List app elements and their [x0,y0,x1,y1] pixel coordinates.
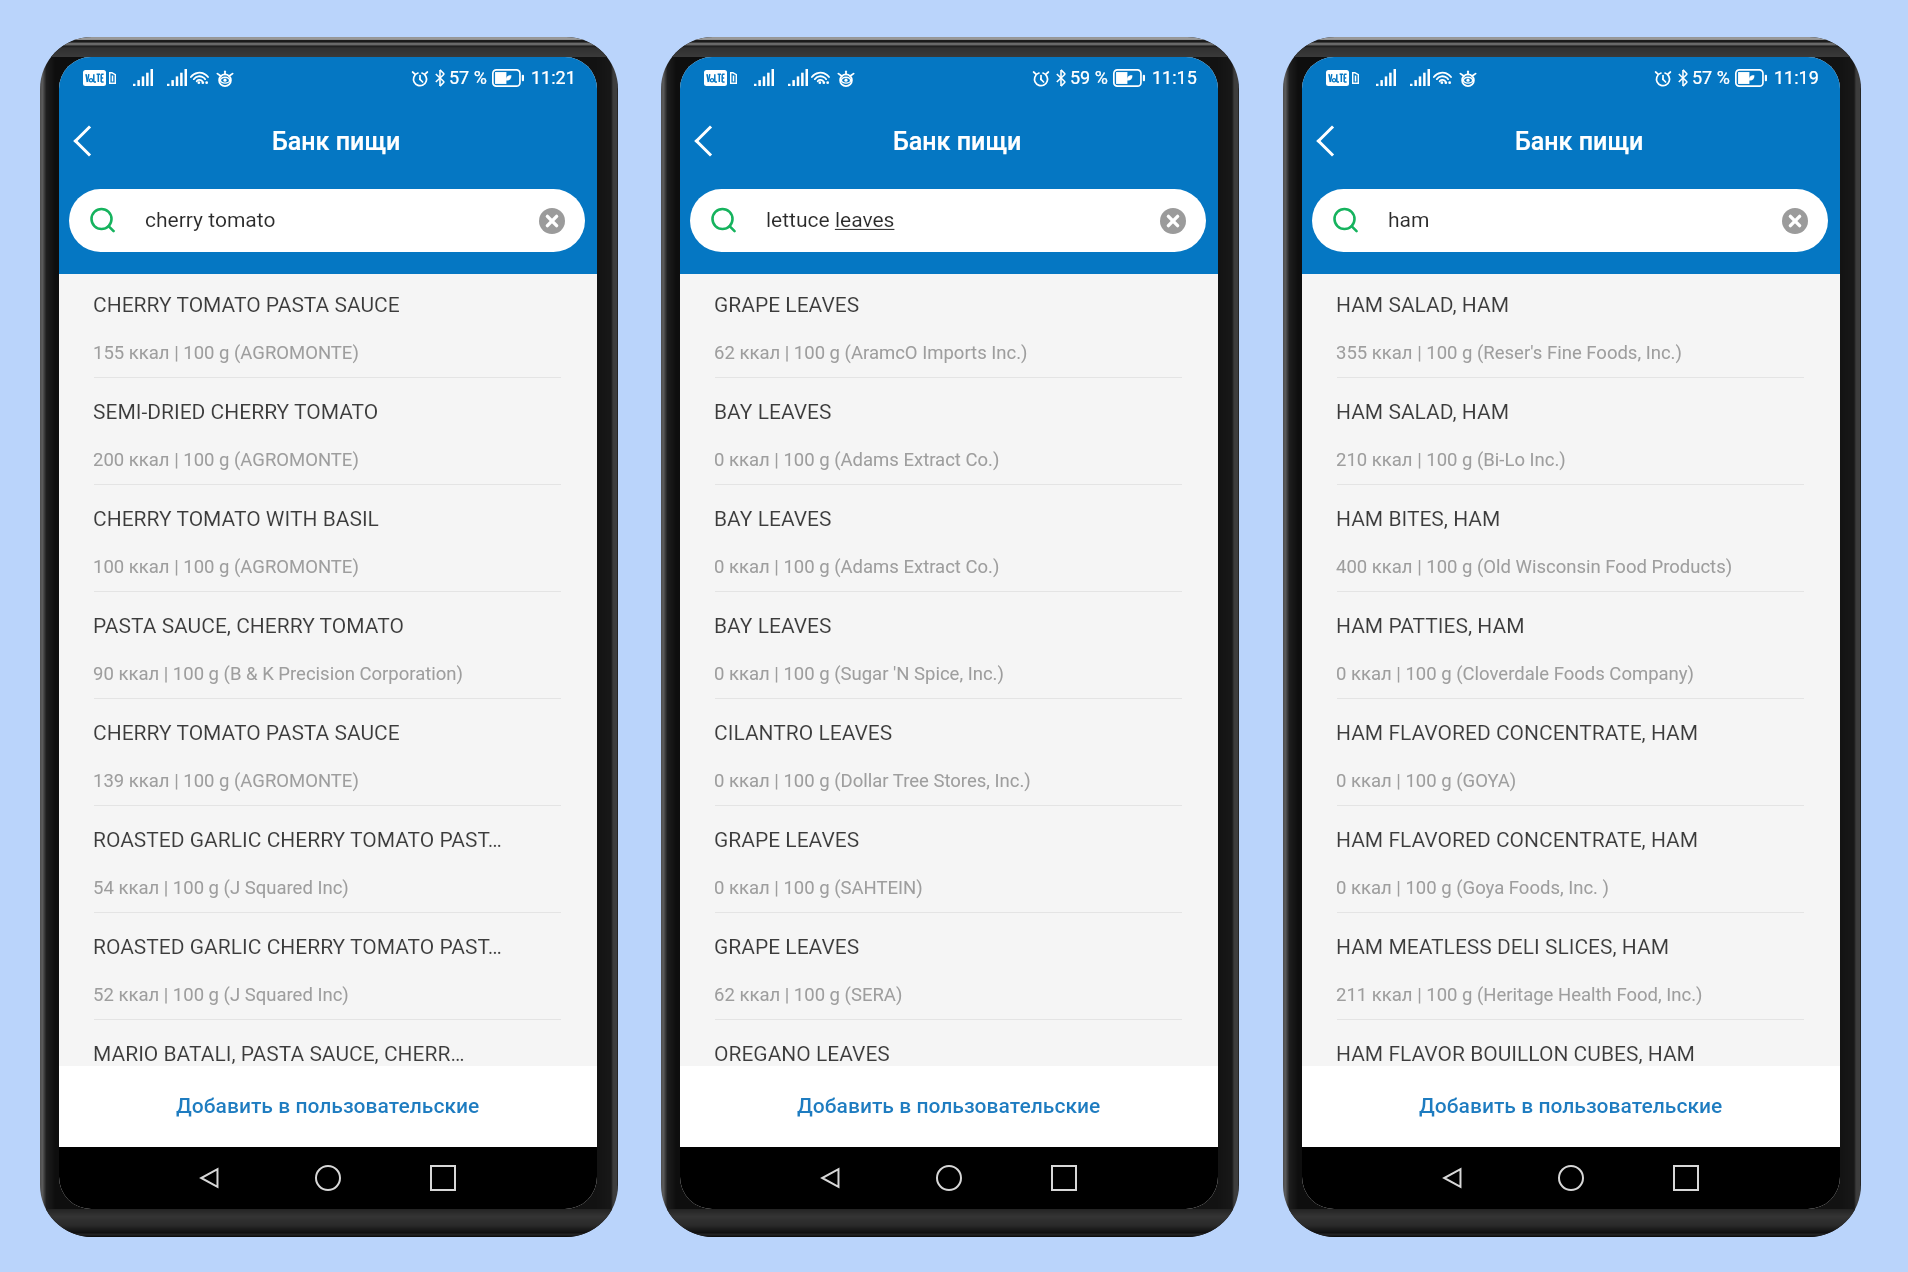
staticText: 139 ккал | 100 g (AGROMONTE) [93,770,359,792]
staticText: Добавить в пользовательские [176,1094,480,1119]
staticText: ROASTED GARLIC CHERRY TOMATO PAST… [93,935,502,960]
staticText: 0 ккал | 100 g (Adams Extract Co.) [714,556,1000,578]
button[interactable]: Back [680,113,731,169]
button[interactable]: Clear search [1782,208,1808,234]
button[interactable]: MARIO BATALI, PASTA SAUCE, CHERR… [59,1023,597,1066]
button[interactable]: Back [804,1151,858,1205]
staticText: HAM SALAD, HAM [1336,293,1510,318]
staticText: cherry tomato [145,208,276,233]
staticText: 0 ккал | 100 g (SAHTEIN) [714,877,923,899]
button[interactable]: PASTA SAUCE, CHERRY TOMATO [59,595,597,702]
button[interactable]: Home [922,1151,976,1205]
button[interactable]: HAM FLAVOR BOUILLON CUBES, HAM [1302,1023,1840,1066]
button[interactable]: GRAPE LEAVES [680,809,1218,916]
button[interactable]: HAM SALAD, HAM [1302,274,1840,381]
staticText: 11:19 [1774,67,1819,88]
button[interactable]: CILANTRO LEAVES [680,702,1218,809]
staticText: MARIO BATALI, PASTA SAUCE, CHERR… [93,1042,465,1067]
staticText: Банк пищи [272,127,401,156]
button[interactable]: Recents [1659,1151,1713,1205]
staticText: SEMI-DRIED CHERRY TOMATO [93,400,379,425]
staticText: CHERRY TOMATO PASTA SAUCE [93,293,400,318]
button[interactable]: HAM PATTIES, HAM [1302,595,1840,702]
button[interactable]: CHERRY TOMATO PASTA SAUCE [59,274,597,381]
staticText: BAY LEAVES [714,400,832,425]
staticText: HAM FLAVORED CONCENTRATE, HAM [1336,828,1699,853]
button[interactable]: Back [59,113,110,169]
staticText: HAM MEATLESS DELI SLICES, HAM [1336,935,1670,960]
staticText: CHERRY TOMATO PASTA SAUCE [93,721,400,746]
button[interactable]: Back [1302,113,1353,169]
staticText: ham [1388,208,1430,233]
staticText: 62 ккал | 100 g (AramcO Imports Inc.) [714,342,1028,364]
button[interactable]: GRAPE LEAVES [680,274,1218,381]
staticText: HAM FLAVOR BOUILLON CUBES, HAM [1336,1042,1695,1067]
staticText: 57 % [449,67,487,88]
staticText: Банк пищи [1515,127,1644,156]
staticText: 0 ккал | 100 g (Sugar 'N Spice, Inc.) [714,663,1004,685]
staticText: 57 % [1692,67,1730,88]
button[interactable]: lettuce leaves [690,189,1206,252]
button[interactable]: HAM SALAD, HAM [1302,381,1840,488]
staticText: 210 ккал | 100 g (Bi-Lo Inc.) [1336,449,1566,471]
button[interactable]: BAY LEAVES [680,595,1218,702]
staticText: 0 ккал | 100 g (Adams Extract Co.) [714,449,1000,471]
button[interactable]: SEMI-DRIED CHERRY TOMATO [59,381,597,488]
staticText: PASTA SAUCE, CHERRY TOMATO [93,614,404,639]
button[interactable]: HAM FLAVORED CONCENTRATE, HAM [1302,702,1840,809]
button[interactable]: ham [1312,189,1828,252]
button[interactable]: Добавить в пользовательские [680,1066,1218,1147]
staticText: 400 ккал | 100 g (Old Wisconsin Food Pro… [1336,556,1733,578]
staticText: 0 ккал | 100 g (Dollar Tree Stores, Inc.… [714,770,1031,792]
staticText: 155 ккал | 100 g (AGROMONTE) [93,342,359,364]
staticText: HAM BITES, HAM [1336,507,1501,532]
staticText: 11:15 [1152,67,1197,88]
staticText: 100 ккал | 100 g (AGROMONTE) [93,556,359,578]
button[interactable]: Добавить в пользовательские [1302,1066,1840,1147]
button[interactable]: cherry tomato [69,189,585,252]
staticText: 54 ккал | 100 g (J Squared Inc) [93,877,349,899]
staticText: 90 ккал | 100 g (B & K Precision Corpora… [93,663,464,685]
button[interactable]: GRAPE LEAVES [680,916,1218,1023]
button[interactable]: Добавить в пользовательские [59,1066,597,1147]
button[interactable]: Back [1426,1151,1480,1205]
staticText: 11:21 [531,67,576,88]
button[interactable]: BAY LEAVES [680,381,1218,488]
button[interactable]: Clear search [539,208,565,234]
staticText: ROASTED GARLIC CHERRY TOMATO PAST… [93,828,502,853]
staticText: lettuce leaves [766,208,895,233]
staticText: GRAPE LEAVES [714,293,860,318]
staticText: HAM PATTIES, HAM [1336,614,1525,639]
staticText: 59 % [1070,67,1108,88]
staticText: 0 ккал | 100 g (GOYA) [1336,770,1517,792]
button[interactable]: BAY LEAVES [680,488,1218,595]
button[interactable]: Home [1544,1151,1598,1205]
staticText: HAM SALAD, HAM [1336,400,1510,425]
staticText: 52 ккал | 100 g (J Squared Inc) [93,984,349,1006]
button[interactable]: CHERRY TOMATO PASTA SAUCE [59,702,597,809]
button[interactable]: ROASTED GARLIC CHERRY TOMATO PAST… [59,916,597,1023]
button[interactable]: Recents [1037,1151,1091,1205]
button[interactable]: Clear search [1160,208,1186,234]
staticText: 0 ккал | 100 g (Cloverdale Foods Company… [1336,663,1695,685]
staticText: Добавить в пользовательские [1419,1094,1723,1119]
staticText: HAM FLAVORED CONCENTRATE, HAM [1336,721,1699,746]
staticText: OREGANO LEAVES [714,1042,890,1067]
button[interactable]: HAM MEATLESS DELI SLICES, HAM [1302,916,1840,1023]
button[interactable]: ROASTED GARLIC CHERRY TOMATO PAST… [59,809,597,916]
button[interactable]: Back [183,1151,237,1205]
staticText: 0 ккал | 100 g (Goya Foods, Inc. ) [1336,877,1610,899]
staticText: BAY LEAVES [714,507,832,532]
staticText: Добавить в пользовательские [797,1094,1101,1119]
button[interactable]: HAM BITES, HAM [1302,488,1840,595]
staticText: 355 ккал | 100 g (Reser's Fine Foods, In… [1336,342,1682,364]
button[interactable]: Recents [416,1151,470,1205]
button[interactable]: HAM FLAVORED CONCENTRATE, HAM [1302,809,1840,916]
staticText: Банк пищи [893,127,1022,156]
button[interactable]: CHERRY TOMATO WITH BASIL [59,488,597,595]
button[interactable]: OREGANO LEAVES [680,1023,1218,1066]
button[interactable]: Home [301,1151,355,1205]
staticText: 200 ккал | 100 g (AGROMONTE) [93,449,359,471]
staticText: GRAPE LEAVES [714,828,860,853]
staticText: CHERRY TOMATO WITH BASIL [93,507,379,532]
